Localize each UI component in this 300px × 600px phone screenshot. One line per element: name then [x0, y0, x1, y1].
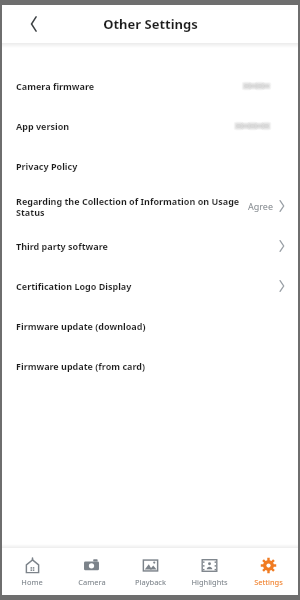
- staticText: Settings: [254, 577, 283, 587]
- staticText: Privacy Policy: [16, 160, 276, 172]
- staticText: Camera firmware: [16, 80, 244, 92]
- staticText: Firmware update (download): [16, 320, 276, 332]
- staticText: Highlights: [191, 577, 228, 587]
- button[interactable]: Firmware update (download): [2, 306, 298, 346]
- button[interactable]: Third party software: [2, 226, 298, 266]
- staticText: Playback: [135, 577, 166, 587]
- staticText: Firmware update (from card): [16, 360, 276, 372]
- button[interactable]: Highlights: [180, 548, 239, 595]
- staticText: Regarding the Collection of Information …: [16, 195, 248, 218]
- button[interactable]: Playback: [121, 548, 180, 595]
- button[interactable]: Privacy Policy: [2, 146, 298, 186]
- staticText: Other Settings: [103, 15, 198, 33]
- button[interactable]: Home: [2, 548, 62, 595]
- button[interactable]: Regarding the Collection of Information …: [2, 186, 298, 226]
- staticText: Home: [21, 577, 43, 587]
- staticText: Camera: [78, 577, 106, 587]
- button[interactable]: Certification Logo Display: [2, 266, 298, 306]
- button[interactable]: Settings: [239, 548, 298, 595]
- button[interactable]: App version: [2, 106, 298, 146]
- staticText: App version: [16, 120, 236, 132]
- staticText: Certification Logo Display: [16, 280, 276, 292]
- button[interactable]: Camera firmware: [2, 66, 298, 106]
- button[interactable]: Firmware update (from card): [2, 346, 298, 386]
- button[interactable]: Back: [20, 9, 50, 39]
- button[interactable]: Camera: [62, 548, 121, 595]
- staticText: Agree: [248, 200, 273, 212]
- staticText: Third party software: [16, 240, 276, 252]
